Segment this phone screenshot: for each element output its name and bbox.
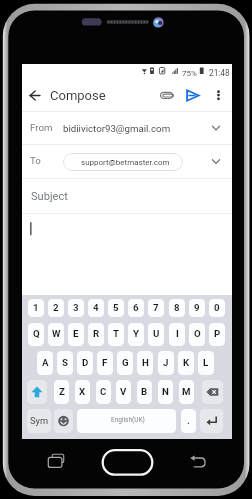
staticText: Z	[59, 386, 65, 397]
staticText: A	[42, 357, 49, 368]
button[interactable]: From	[22, 112, 232, 144]
staticText: bidiivictor93@gmail.com	[63, 123, 171, 134]
staticText: support@betmaster.com	[81, 158, 170, 167]
staticText: V	[120, 386, 127, 397]
staticText: W	[52, 328, 61, 339]
button[interactable]: Backspace	[202, 380, 223, 404]
staticText: 75%	[182, 69, 197, 78]
button[interactable]: D	[77, 351, 93, 375]
button[interactable]: 8	[169, 299, 185, 317]
button[interactable]	[22, 214, 232, 295]
staticText: S	[62, 357, 68, 368]
staticText: E	[73, 328, 79, 339]
staticText: J	[163, 357, 169, 368]
button[interactable]: 4	[88, 299, 104, 317]
button[interactable]: 9	[189, 299, 205, 317]
staticText: 2	[53, 302, 59, 313]
button[interactable]: support@betmaster.com	[63, 153, 183, 171]
button[interactable]: A	[37, 351, 53, 375]
button[interactable]: Shift	[27, 380, 47, 404]
staticText: Sym	[30, 415, 49, 426]
button[interactable]: F	[97, 351, 113, 375]
button[interactable]: J	[158, 351, 174, 375]
staticText: 9	[194, 302, 200, 313]
staticText: Subject	[31, 190, 68, 203]
button[interactable]: U	[148, 323, 164, 346]
button[interactable]: P	[209, 323, 225, 346]
button[interactable]: E	[68, 323, 84, 346]
button[interactable]: W	[48, 323, 64, 346]
button[interactable]: I	[169, 323, 185, 346]
button[interactable]: Q	[28, 323, 44, 346]
button[interactable]: To	[22, 145, 232, 178]
button[interactable]: .	[181, 409, 196, 433]
button[interactable]: Enter	[200, 409, 223, 433]
button[interactable]: 0	[209, 299, 225, 317]
button[interactable]: Emoji	[54, 409, 73, 433]
staticText: 6	[133, 302, 139, 313]
button[interactable]: K	[178, 351, 194, 375]
button[interactable]: Y	[128, 323, 144, 346]
staticText: Q	[33, 328, 40, 339]
staticText: 0	[214, 302, 220, 313]
staticText: F	[102, 357, 108, 368]
staticText: C	[100, 386, 107, 397]
staticText: 1	[33, 302, 39, 313]
button[interactable]: H	[137, 351, 153, 375]
staticText: U	[153, 328, 160, 339]
staticText: D	[82, 357, 89, 368]
staticText: .	[187, 415, 190, 426]
staticText: 4	[93, 302, 99, 313]
button[interactable]: Sym	[27, 409, 51, 433]
staticText: P	[214, 328, 221, 339]
button[interactable]: English(UK)	[77, 409, 176, 433]
button[interactable]: 2	[48, 299, 64, 317]
staticText: 3	[73, 302, 79, 313]
staticText: English(UK)	[111, 416, 145, 424]
button[interactable]: Send	[183, 85, 204, 106]
staticText: O	[194, 328, 201, 339]
staticText: 5	[113, 302, 119, 313]
button[interactable]: Subject	[22, 179, 232, 213]
button[interactable]: 3	[68, 299, 84, 317]
staticText: I	[176, 328, 179, 339]
button[interactable]: Back	[22, 85, 43, 106]
staticText: N	[162, 386, 169, 397]
staticText: M	[182, 386, 191, 397]
button[interactable]: More options	[208, 85, 229, 106]
button[interactable]: Attach file	[156, 85, 177, 106]
staticText: X	[79, 386, 86, 397]
button[interactable]: 5	[108, 299, 124, 317]
staticText: 21:48	[209, 68, 230, 78]
button[interactable]: O	[189, 323, 205, 346]
button[interactable]: T	[108, 323, 124, 346]
staticText: From	[30, 122, 53, 133]
button[interactable]: M	[179, 380, 194, 404]
button[interactable]: L	[198, 351, 214, 375]
staticText: L	[203, 357, 209, 368]
staticText: Y	[133, 328, 139, 339]
button[interactable]: 1	[28, 299, 44, 317]
staticText: R	[93, 328, 100, 339]
button[interactable]: C	[96, 380, 111, 404]
button[interactable]: S	[57, 351, 73, 375]
button[interactable]: Z	[54, 380, 69, 404]
button[interactable]: V	[116, 380, 131, 404]
staticText: T	[113, 328, 119, 339]
button[interactable]: 7	[148, 299, 164, 317]
staticText: G	[122, 357, 129, 368]
button[interactable]: 6	[128, 299, 144, 317]
button[interactable]: G	[117, 351, 133, 375]
button[interactable]: B	[137, 380, 152, 404]
staticText: H	[142, 357, 149, 368]
staticText: To	[30, 155, 41, 166]
staticText: B	[141, 386, 148, 397]
button[interactable]: X	[75, 380, 90, 404]
button[interactable]: R	[88, 323, 104, 346]
staticText: K	[183, 357, 190, 368]
staticText: Compose	[50, 88, 106, 103]
button[interactable]: N	[158, 380, 173, 404]
staticText: 7	[153, 302, 159, 313]
staticText: 8	[174, 302, 180, 313]
